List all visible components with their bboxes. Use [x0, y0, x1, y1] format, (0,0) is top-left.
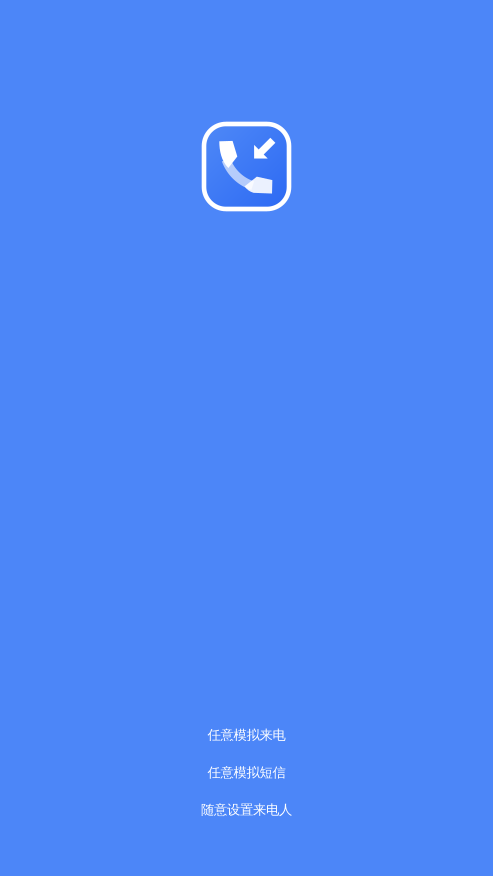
staticText: 任意模拟短信: [207, 764, 285, 781]
staticText: 任意模拟来电: [207, 727, 285, 743]
staticText: 随意设置来电人: [201, 802, 292, 818]
